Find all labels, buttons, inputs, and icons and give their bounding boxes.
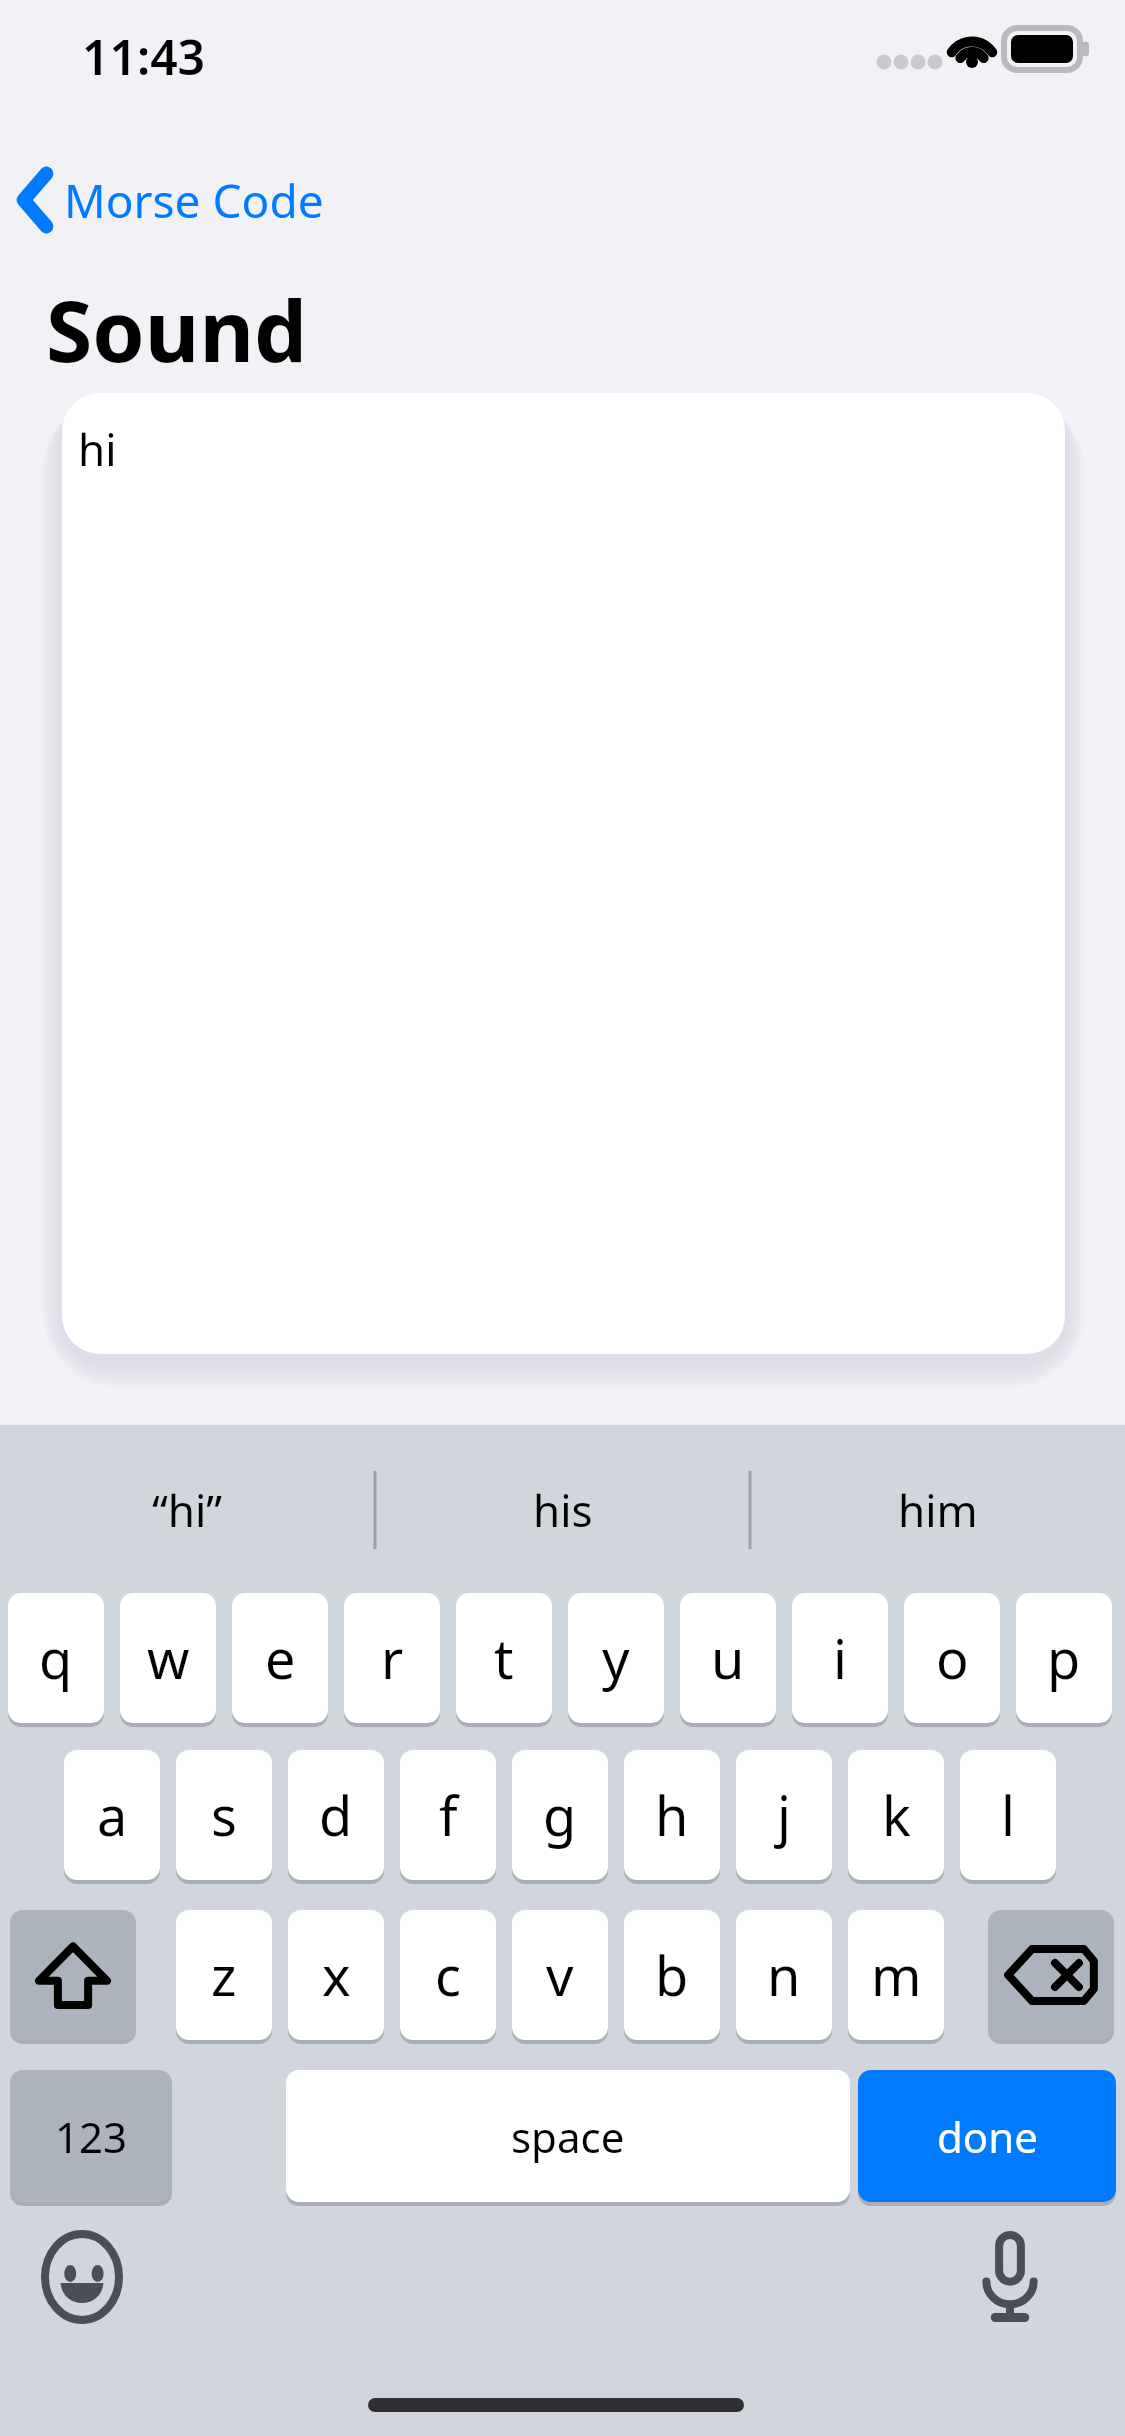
staticText: m (871, 1938, 922, 2012)
staticText: done (937, 2108, 1038, 2165)
staticText: l (1001, 1778, 1015, 1852)
staticText: r (381, 1621, 404, 1695)
staticText: h (655, 1778, 689, 1852)
button[interactable]: j (736, 1750, 832, 1880)
button[interactable]: Morse Code (16, 158, 324, 242)
staticText: o (936, 1621, 969, 1695)
button[interactable]: h (624, 1750, 720, 1880)
staticText: Morse Code (64, 169, 324, 232)
button[interactable]: s (176, 1750, 272, 1880)
button[interactable]: o (904, 1593, 1000, 1723)
staticText: “hi” (152, 1480, 223, 1540)
button[interactable]: z (176, 1910, 272, 2040)
staticText: f (439, 1778, 458, 1852)
staticText: Sound (46, 272, 308, 386)
staticText: b (655, 1938, 689, 2012)
staticText: hi (78, 419, 117, 479)
button[interactable]: d (288, 1750, 384, 1880)
button[interactable]: y (568, 1593, 664, 1723)
staticText: s (211, 1778, 237, 1852)
staticText: his (533, 1480, 593, 1540)
button[interactable]: hi (62, 393, 1065, 1354)
staticText: u (711, 1621, 745, 1695)
button[interactable]: v (512, 1910, 608, 2040)
button[interactable]: Backspace (988, 1910, 1114, 2040)
button[interactable]: l (960, 1750, 1056, 1880)
button[interactable]: q (8, 1593, 104, 1723)
button[interactable]: k (848, 1750, 944, 1880)
button[interactable]: b (624, 1910, 720, 2040)
button[interactable]: Emoji keyboard (30, 2225, 134, 2329)
button[interactable]: t (456, 1593, 552, 1723)
staticText: q (39, 1621, 73, 1695)
button[interactable]: 123 (10, 2070, 172, 2202)
staticText: j (777, 1778, 791, 1852)
button[interactable]: done (858, 2070, 1116, 2202)
staticText: d (319, 1778, 353, 1852)
staticText: w (147, 1621, 190, 1695)
button[interactable]: i (792, 1593, 888, 1723)
staticText: 11:43 (82, 24, 206, 89)
button[interactable]: space (286, 2070, 850, 2202)
staticText: g (543, 1778, 577, 1852)
button[interactable]: p (1016, 1593, 1112, 1723)
staticText: him (898, 1480, 978, 1540)
button[interactable]: w (120, 1593, 216, 1723)
button[interactable]: a (64, 1750, 160, 1880)
staticText: k (882, 1778, 911, 1852)
staticText: p (1047, 1621, 1081, 1695)
button[interactable]: “hi” (0, 1425, 375, 1595)
button[interactable]: m (848, 1910, 944, 2040)
staticText: i (833, 1621, 847, 1695)
staticText: space (511, 2108, 625, 2165)
staticText: x (322, 1938, 351, 2012)
staticText: 123 (55, 2108, 128, 2165)
button[interactable]: e (232, 1593, 328, 1723)
staticText: y (602, 1621, 630, 1695)
staticText: v (546, 1938, 574, 2012)
staticText: n (767, 1938, 801, 2012)
button[interactable]: his (375, 1425, 750, 1595)
staticText: e (265, 1621, 296, 1695)
button[interactable]: f (400, 1750, 496, 1880)
button[interactable]: n (736, 1910, 832, 2040)
button[interactable]: c (400, 1910, 496, 2040)
button[interactable]: x (288, 1910, 384, 2040)
staticText: z (211, 1938, 237, 2012)
staticText: t (494, 1621, 514, 1695)
staticText: a (97, 1778, 128, 1852)
button[interactable]: Shift (10, 1910, 136, 2040)
button[interactable]: g (512, 1750, 608, 1880)
button[interactable]: Dictation (958, 2225, 1062, 2329)
button[interactable]: r (344, 1593, 440, 1723)
button[interactable]: him (750, 1425, 1125, 1595)
button[interactable]: u (680, 1593, 776, 1723)
staticText: c (435, 1938, 461, 2012)
